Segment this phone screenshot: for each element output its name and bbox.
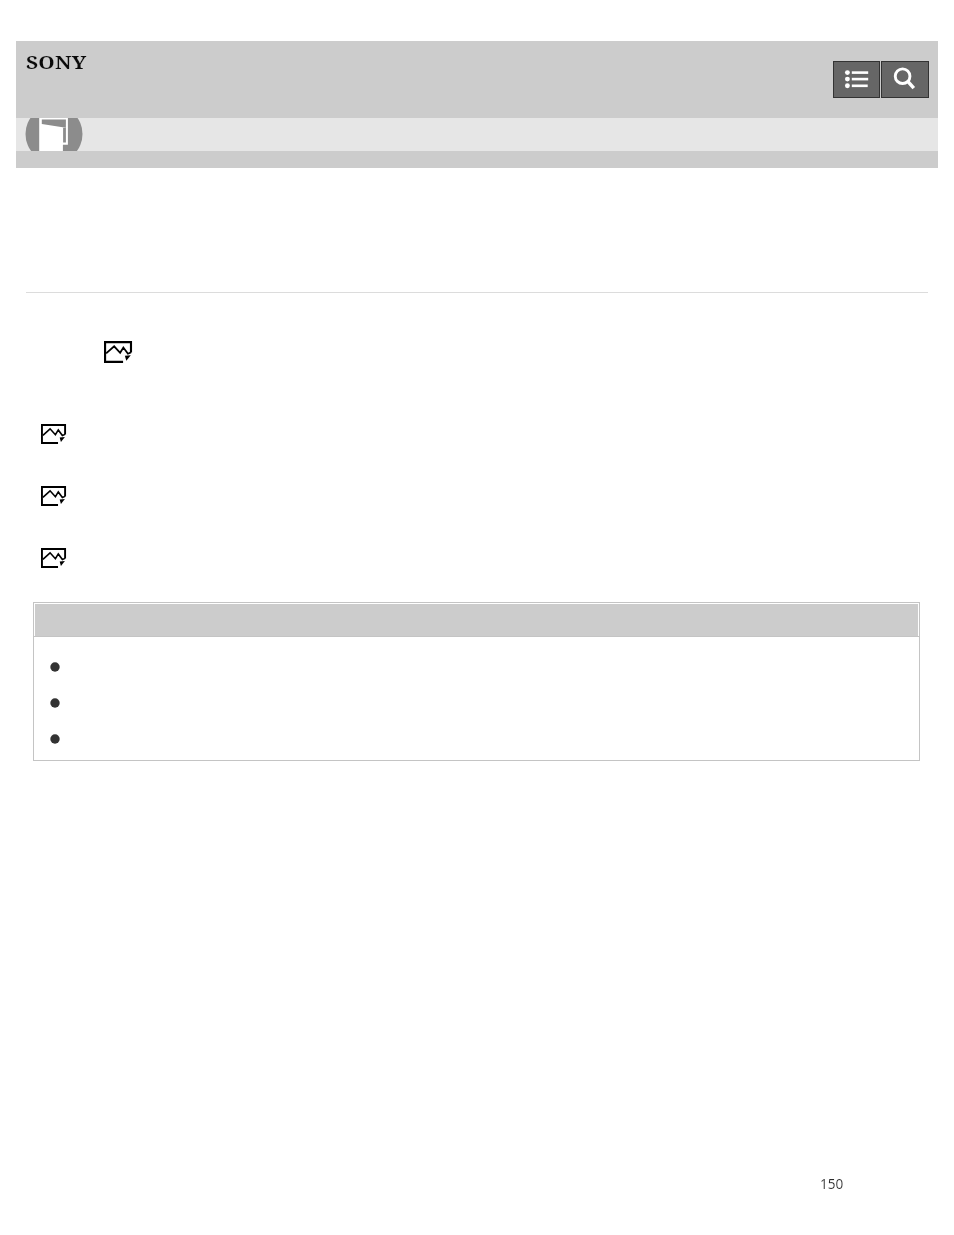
button[interactable]: Help Guide home [25, 118, 83, 151]
button[interactable]: Search [881, 61, 929, 98]
button[interactable]: SONY [24, 52, 88, 72]
button[interactable]: Table of contents [833, 61, 880, 98]
staticText: SONY [26, 50, 87, 70]
staticText: 150 [820, 1174, 844, 1193]
